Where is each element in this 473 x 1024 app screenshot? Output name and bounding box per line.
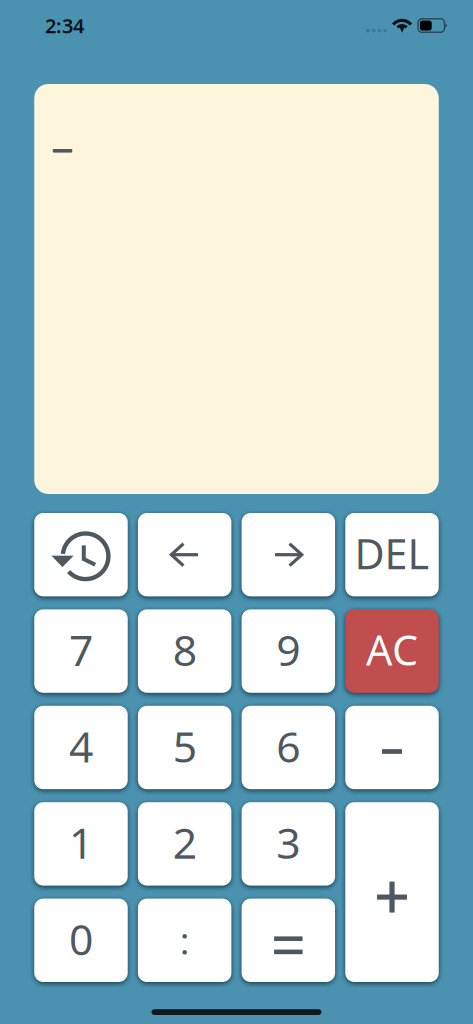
button[interactable]	[138, 609, 231, 693]
button[interactable]	[345, 609, 439, 693]
button[interactable]	[242, 899, 335, 982]
button[interactable]: Minus	[345, 706, 439, 789]
staticText: 4	[69, 718, 93, 774]
button[interactable]	[138, 802, 231, 886]
staticText: 9	[276, 621, 300, 678]
staticText: 3	[276, 814, 300, 871]
button[interactable]	[345, 802, 439, 982]
button[interactable]	[138, 706, 231, 789]
staticText: 8	[173, 621, 197, 678]
staticText: 5	[173, 718, 197, 774]
button[interactable]	[34, 706, 128, 789]
staticText: 7	[69, 621, 93, 678]
staticText: 0	[69, 910, 93, 967]
staticText: 1	[69, 814, 93, 871]
staticText: 6	[276, 718, 300, 774]
button[interactable]: Move right	[242, 513, 335, 596]
button[interactable]	[345, 513, 439, 596]
staticText: AC	[366, 622, 418, 677]
button[interactable]	[242, 802, 335, 886]
button[interactable]	[242, 706, 335, 789]
button[interactable]	[34, 609, 128, 693]
button[interactable]	[34, 899, 128, 982]
button[interactable]	[242, 609, 335, 693]
button[interactable]	[34, 802, 128, 886]
staticText: 2	[173, 814, 197, 871]
button[interactable]	[138, 899, 231, 982]
button[interactable]: Move left	[138, 513, 231, 596]
staticText: 2:34	[45, 12, 84, 39]
staticText: DEL	[354, 526, 429, 581]
button[interactable]: History	[34, 513, 128, 596]
